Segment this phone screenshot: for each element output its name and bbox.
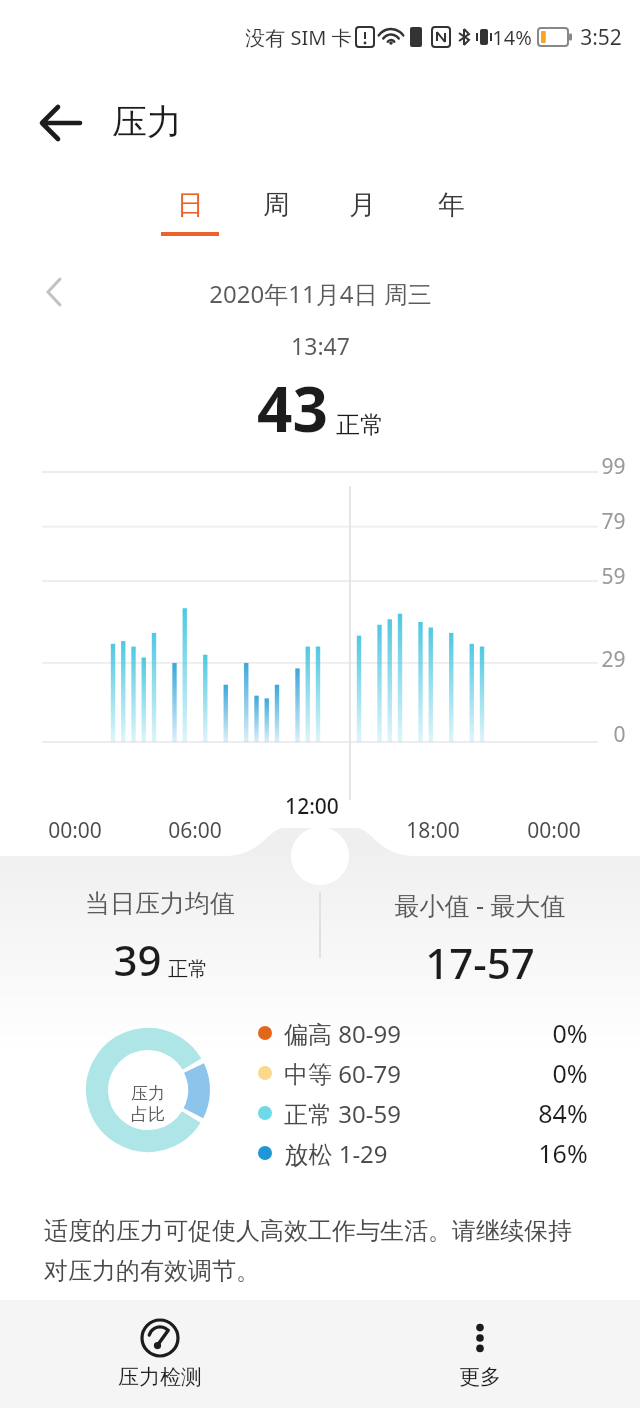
button[interactable]: 偏高 80-99 xyxy=(258,1014,588,1052)
staticText: 月 xyxy=(349,188,376,222)
staticText: 压力 xyxy=(131,1083,165,1104)
staticText: 年 xyxy=(438,188,465,222)
staticText: 更多 xyxy=(459,1364,501,1390)
staticText: 06:00 xyxy=(168,816,222,845)
button[interactable]: 日 xyxy=(154,188,226,246)
staticText: 39 xyxy=(113,931,162,988)
staticText: 84% xyxy=(538,1096,588,1130)
button[interactable]: 前一天 xyxy=(28,266,80,318)
button[interactable]: 中等 60-79 xyxy=(258,1054,588,1092)
button[interactable]: 月 xyxy=(326,188,398,246)
button[interactable]: 更多 xyxy=(320,1300,640,1408)
button[interactable]: 压力检测 xyxy=(0,1300,320,1408)
staticText: 12:00 xyxy=(285,792,339,821)
staticText: 17-57 xyxy=(425,934,535,991)
staticText: 16% xyxy=(538,1136,588,1170)
button[interactable]: 返回 xyxy=(32,94,90,152)
staticText: 00:00 xyxy=(527,816,581,845)
staticText: 29 xyxy=(601,645,626,674)
staticText: 43 xyxy=(257,366,328,450)
staticText: 周 xyxy=(263,188,290,222)
staticText: 0% xyxy=(552,1056,588,1090)
staticText: 59 xyxy=(601,562,626,591)
staticText: 79 xyxy=(601,507,626,536)
button[interactable]: 周 xyxy=(240,188,312,246)
staticText: 压力 xyxy=(112,100,182,144)
staticText: 18:00 xyxy=(406,816,460,845)
staticText: 压力检测 xyxy=(118,1364,202,1390)
staticText: 正常 xyxy=(168,957,208,982)
staticText: 没有 SIM 卡 xyxy=(245,24,352,51)
staticText: 最小值 - 最大值 xyxy=(394,888,566,922)
staticText: 适度的压力可促使人高效工作与生活。请继续保持 对压力的有效调节。 xyxy=(44,1216,600,1286)
staticText: 3:52 xyxy=(580,23,622,52)
staticText: 占比 xyxy=(131,1104,165,1125)
staticText: 0% xyxy=(552,1016,588,1050)
staticText: 0 xyxy=(613,720,626,749)
staticText: 2020年11月4日 周三 xyxy=(209,277,432,310)
staticText: 放松 1-29 xyxy=(284,1137,388,1170)
staticText: 日 xyxy=(177,188,204,222)
button[interactable]: 年 xyxy=(415,188,487,246)
button[interactable]: 正常 30-59 xyxy=(258,1094,588,1132)
staticText: 14% xyxy=(492,24,532,51)
staticText: 偏高 80-99 xyxy=(284,1017,401,1050)
staticText: 00:00 xyxy=(48,816,102,845)
staticText: 正常 xyxy=(336,410,384,440)
staticText: 当日压力均值 xyxy=(85,888,235,919)
staticText: 正常 30-59 xyxy=(284,1097,401,1130)
button[interactable]: 放松 1-29 xyxy=(258,1134,588,1172)
staticText: 中等 60-79 xyxy=(284,1057,401,1090)
staticText: 99 xyxy=(601,452,626,481)
staticText: 13:47 xyxy=(291,330,350,361)
